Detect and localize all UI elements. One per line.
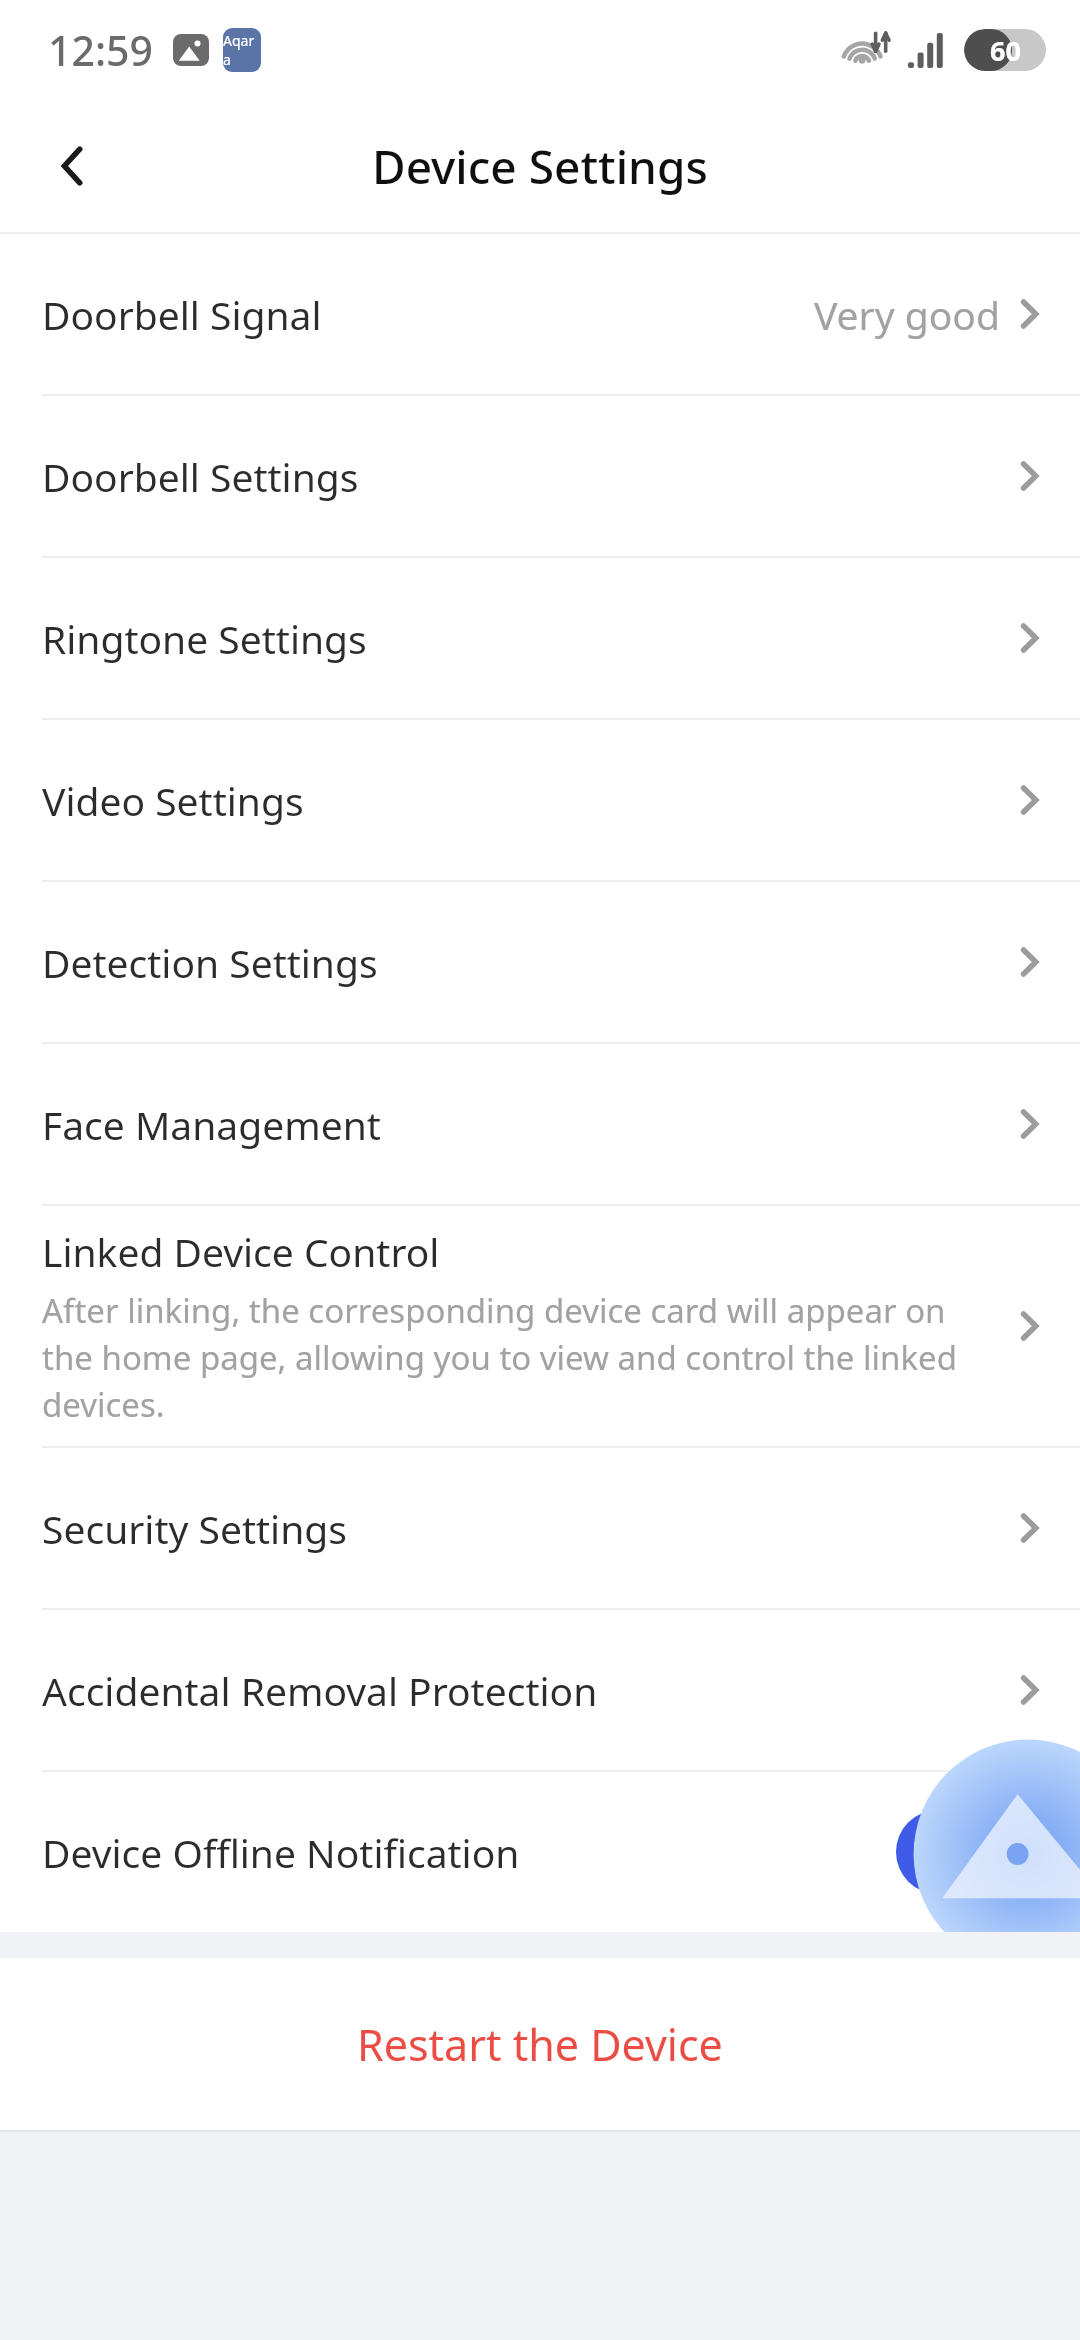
staticText: Security Settings [42,1502,347,1555]
staticText: Very good [814,288,1000,341]
staticText: Doorbell Signal [42,288,322,341]
staticText: Doorbell Settings [42,450,359,503]
button[interactable]: Detection Settings [0,882,1080,1042]
button[interactable]: Doorbell Signal [0,234,1080,394]
staticText: Accidental Removal Protection [42,1664,598,1717]
staticText: Detection Settings [42,936,378,989]
button[interactable]: Restart the Device [0,1958,1080,2130]
staticText: Linked Device Control [42,1225,440,1278]
staticText: Video Settings [42,774,304,827]
button[interactable]: Face Management [0,1044,1080,1204]
staticText: 60 [990,32,1021,69]
button[interactable]: Video Settings [0,720,1080,880]
staticText: Aqara [223,31,261,69]
staticText: Device Offline Notification [42,1826,520,1879]
staticText: After linking, the corresponding device … [42,1288,986,1427]
button[interactable]: Device Offline Notification toggle [896,1810,1040,1894]
button[interactable]: Doorbell Settings [0,396,1080,556]
staticText: Face Management [42,1098,381,1151]
button[interactable]: Ringtone Settings [0,558,1080,718]
staticText: Restart the Device [357,2015,723,2074]
button[interactable]: Accidental Removal Protection [0,1610,1080,1770]
button[interactable]: Linked Device Control [0,1206,1080,1446]
button[interactable]: Security Settings [0,1448,1080,1608]
button[interactable]: Back [28,120,120,212]
button[interactable]: Device Offline Notification [0,1772,1080,1932]
staticText: Device Settings [372,135,708,198]
staticText: 12:59 [48,22,153,78]
staticText: Ringtone Settings [42,612,367,665]
